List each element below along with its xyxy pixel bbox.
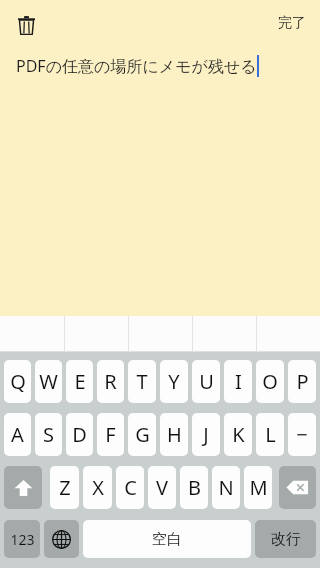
staticText: 空白 [152,530,182,549]
button[interactable]: Q [4,360,31,403]
staticText: O [262,368,278,395]
button[interactable]: E [66,360,93,403]
button[interactable]: W [35,360,62,403]
button[interactable]: B [180,466,208,509]
button[interactable] [65,316,128,352]
button[interactable]: 123 [4,520,40,558]
button[interactable]: V [148,466,176,509]
button[interactable]: L [256,413,284,456]
button[interactable]: C [116,466,144,509]
staticText: C [124,474,137,501]
staticText: Y [168,368,180,395]
staticText: E [74,368,86,395]
staticText: − [296,421,308,448]
button[interactable]: A [4,413,31,456]
staticText: PDFの任意の場所にメモが残せる [16,55,257,77]
button[interactable] [0,316,64,352]
staticText: X [92,474,104,501]
button[interactable]: O [256,360,284,403]
button[interactable]: X [83,466,112,509]
button[interactable]: R [97,360,124,403]
button[interactable]: I [224,360,252,403]
button[interactable]: F [97,413,124,456]
staticText: H [167,421,182,448]
button[interactable] [193,316,256,352]
staticText: Z [59,474,71,501]
button[interactable]: Z [50,466,79,509]
button[interactable]: PDFの任意の場所にメモが残せる [16,55,320,77]
staticText: J [203,421,209,448]
button[interactable]: D [66,413,93,456]
button[interactable]: 完了 [272,10,312,36]
staticText: K [232,421,245,448]
button[interactable]: Shift [4,466,42,509]
button[interactable]: T [128,360,156,403]
button[interactable]: S [35,413,62,456]
button[interactable]: M [244,466,272,509]
staticText: P [296,368,309,395]
button[interactable]: G [128,413,156,456]
staticText: 改行 [271,530,301,549]
staticText: W [39,368,58,395]
button[interactable]: J [192,413,220,456]
staticText: S [43,421,54,448]
button[interactable]: Switch language [44,520,79,558]
staticText: M [249,474,268,501]
staticText: F [105,421,116,448]
button[interactable]: H [160,413,188,456]
staticText: D [72,421,87,448]
staticText: I [235,368,242,395]
staticText: A [11,421,24,448]
staticText: 123 [10,530,35,549]
staticText: L [265,421,276,448]
staticText: Q [10,368,26,395]
button[interactable]: U [192,360,220,403]
staticText: N [218,474,234,501]
button[interactable]: Y [160,360,188,403]
staticText: U [199,368,214,395]
staticText: T [136,368,148,395]
button[interactable]: Backspace [279,466,316,509]
button[interactable] [257,316,320,352]
staticText: B [188,474,201,501]
button[interactable] [129,316,192,352]
button[interactable]: P [288,360,316,403]
button[interactable]: Delete note [14,13,38,37]
button[interactable]: K [224,413,252,456]
button[interactable]: − [288,413,316,456]
staticText: G [135,421,150,448]
staticText: R [104,368,117,395]
button[interactable]: 空白 [83,520,251,558]
staticText: V [156,474,168,501]
button[interactable]: N [212,466,240,509]
staticText: 完了 [278,14,306,32]
button[interactable]: 改行 [255,520,316,558]
